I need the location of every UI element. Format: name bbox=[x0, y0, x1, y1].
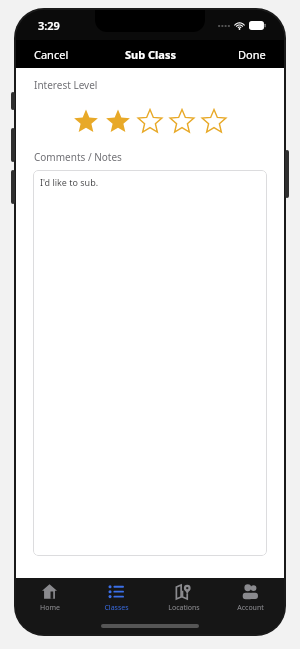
staticText: Classes bbox=[104, 603, 129, 613]
staticText: Done bbox=[238, 47, 266, 62]
button[interactable]: Rate 4 stars bbox=[166, 106, 198, 138]
button[interactable]: Home bbox=[16, 578, 83, 618]
button[interactable]: I'd like to sub. bbox=[33, 170, 267, 556]
button[interactable]: Account bbox=[217, 578, 284, 618]
staticText: Sub Class bbox=[125, 47, 176, 62]
button[interactable]: Done bbox=[220, 40, 284, 68]
staticText: 3:29 bbox=[38, 18, 60, 33]
button[interactable]: Locations bbox=[150, 578, 217, 618]
staticText: Cancel bbox=[34, 47, 69, 62]
staticText: Account bbox=[237, 603, 264, 613]
button[interactable]: Rate 2 stars bbox=[102, 106, 134, 138]
staticText: I'd like to sub. bbox=[40, 176, 99, 188]
staticText: Locations bbox=[168, 603, 200, 613]
button[interactable]: Rate 1 stars bbox=[70, 106, 102, 138]
staticText: Comments / Notes bbox=[34, 150, 122, 164]
staticText: Home bbox=[40, 603, 60, 613]
staticText: Interest Level bbox=[34, 78, 98, 92]
button[interactable]: Cancel bbox=[16, 40, 87, 68]
button[interactable]: Rate 3 stars bbox=[134, 106, 166, 138]
button[interactable]: Classes bbox=[83, 578, 150, 618]
button[interactable]: Rate 5 stars bbox=[198, 106, 230, 138]
